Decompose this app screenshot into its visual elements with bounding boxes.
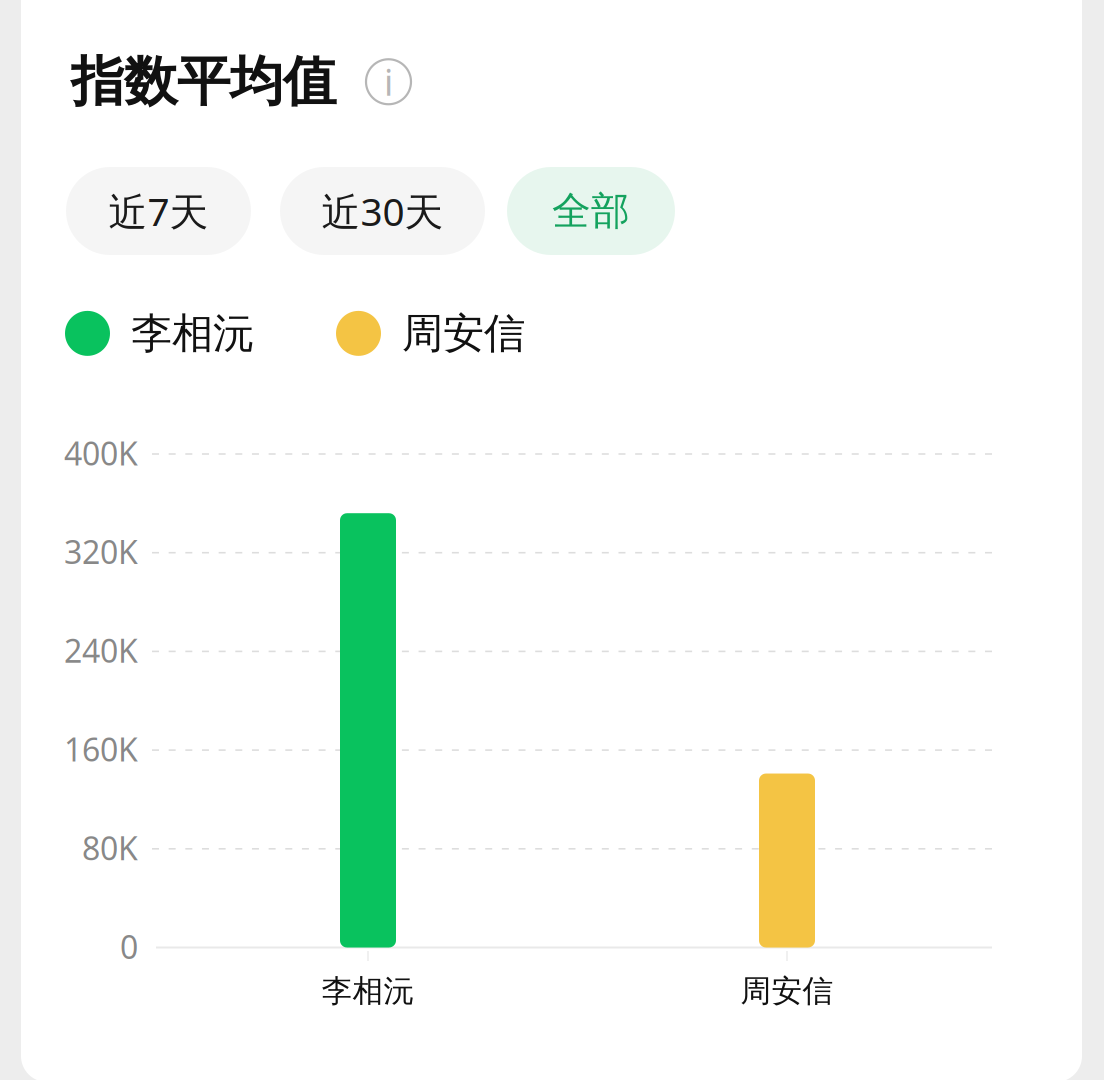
button[interactable]: 全部 [507, 167, 675, 255]
staticText: 周安信 [402, 308, 525, 359]
staticText: 160K [64, 728, 138, 770]
button[interactable]: 关于指数平均值 [366, 59, 411, 104]
staticText: 80K [82, 827, 138, 869]
staticText: 400K [64, 432, 138, 474]
staticText: 李相沅 [321, 972, 414, 1010]
staticText: 240K [64, 629, 138, 672]
staticText: 0 [120, 925, 138, 968]
button[interactable]: 近7天 [66, 167, 251, 255]
staticText: 李相沅 [131, 308, 254, 359]
staticText: 指数平均值 [71, 49, 336, 114]
staticText: 周安信 [740, 972, 833, 1010]
staticText: 近30天 [321, 185, 443, 237]
staticText: 320K [64, 530, 138, 573]
staticText: i [384, 58, 393, 106]
staticText: 近7天 [108, 185, 208, 237]
button[interactable]: 近30天 [280, 167, 485, 255]
staticText: 全部 [552, 187, 630, 235]
